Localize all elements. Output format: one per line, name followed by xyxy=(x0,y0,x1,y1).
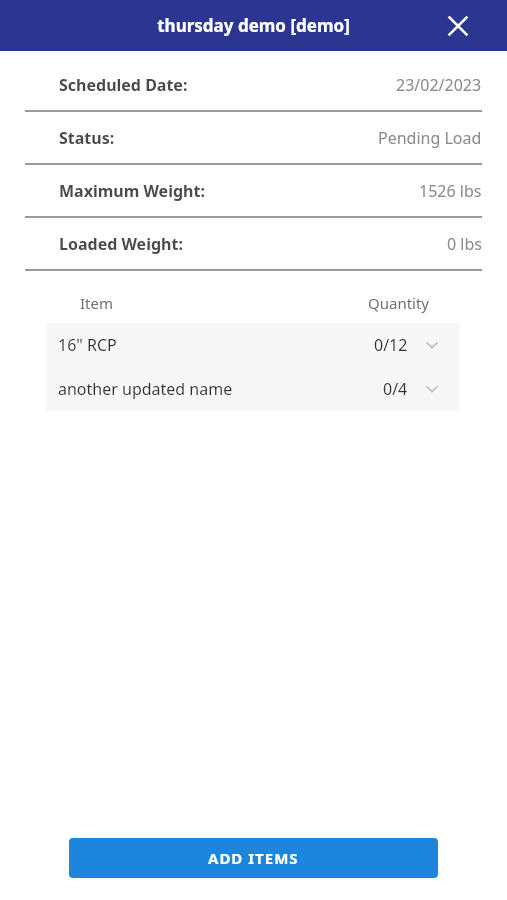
staticText: Status: xyxy=(59,127,115,149)
staticText: Maximum Weight: xyxy=(59,180,205,202)
button[interactable]: Loaded Weight: xyxy=(25,218,482,269)
staticText: 16" RCP xyxy=(58,334,117,356)
staticText: Scheduled Date: xyxy=(59,74,188,96)
staticText: 0 lbs xyxy=(447,233,482,255)
staticText: another updated name xyxy=(58,378,233,400)
staticText: Loaded Weight: xyxy=(59,233,183,255)
staticText: 1526 lbs xyxy=(419,180,482,202)
staticText: Quantity xyxy=(368,293,430,313)
staticText: Item xyxy=(80,293,113,313)
staticText: thursday demo [demo] xyxy=(157,14,350,37)
staticText: 23/02/2023 xyxy=(396,74,482,96)
button[interactable]: Close xyxy=(441,9,475,43)
button[interactable]: Scheduled Date: xyxy=(25,59,482,110)
button[interactable]: 16" RCP xyxy=(46,323,460,367)
button[interactable]: another updated name xyxy=(46,367,460,411)
staticText: Pending Load xyxy=(378,127,482,149)
button[interactable]: ADD ITEMS xyxy=(69,838,438,878)
button[interactable]: Status: xyxy=(25,112,482,163)
staticText: 0/4 xyxy=(383,378,408,400)
staticText: 0/12 xyxy=(374,334,408,356)
button[interactable]: Maximum Weight: xyxy=(25,165,482,216)
staticText: ADD ITEMS xyxy=(208,848,299,868)
